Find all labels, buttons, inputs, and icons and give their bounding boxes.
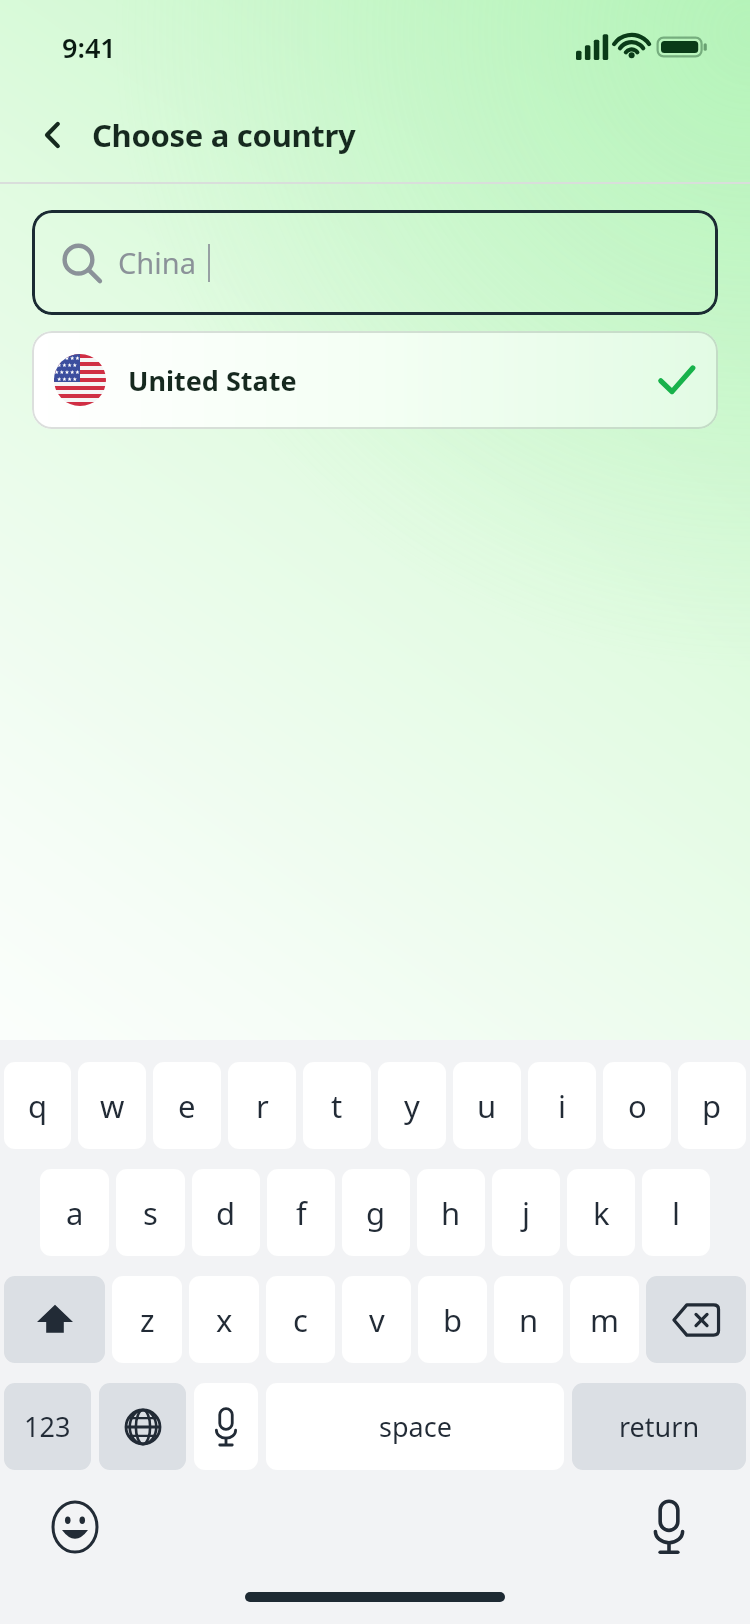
button[interactable]: m bbox=[570, 1276, 639, 1363]
staticText: y bbox=[404, 1085, 420, 1127]
staticText: Choose a country bbox=[92, 114, 356, 156]
button[interactable]: e bbox=[153, 1062, 221, 1149]
button[interactable]: China bbox=[32, 210, 718, 315]
staticText: d bbox=[216, 1192, 236, 1234]
button[interactable]: return bbox=[572, 1383, 746, 1470]
button[interactable]: Back bbox=[26, 108, 80, 162]
button[interactable]: a bbox=[40, 1169, 109, 1256]
staticText: return bbox=[619, 1408, 700, 1445]
staticText: c bbox=[293, 1299, 308, 1341]
staticText: f bbox=[296, 1192, 307, 1234]
staticText: a bbox=[66, 1192, 84, 1234]
button[interactable]: z bbox=[112, 1276, 182, 1363]
button[interactable]: g bbox=[342, 1169, 410, 1256]
staticText: h bbox=[441, 1192, 461, 1234]
button[interactable]: k bbox=[567, 1169, 635, 1256]
button[interactable]: u bbox=[453, 1062, 521, 1149]
button[interactable]: Emoji bbox=[40, 1492, 110, 1562]
staticText: z bbox=[140, 1299, 155, 1341]
staticText: 123 bbox=[24, 1408, 71, 1445]
staticText: l bbox=[672, 1192, 680, 1234]
button[interactable]: v bbox=[342, 1276, 411, 1363]
button[interactable]: x bbox=[189, 1276, 259, 1363]
staticText: v bbox=[369, 1299, 385, 1341]
button[interactable]: r bbox=[228, 1062, 296, 1149]
button[interactable]: h bbox=[417, 1169, 485, 1256]
button[interactable]: i bbox=[528, 1062, 596, 1149]
staticText: m bbox=[590, 1299, 619, 1341]
button[interactable]: Change keyboard language bbox=[99, 1383, 186, 1470]
staticText: n bbox=[519, 1299, 539, 1341]
button[interactable]: l bbox=[642, 1169, 710, 1256]
button[interactable]: d bbox=[192, 1169, 260, 1256]
button[interactable]: Shift bbox=[4, 1276, 105, 1363]
staticText: w bbox=[100, 1085, 125, 1127]
button[interactable]: c bbox=[266, 1276, 335, 1363]
staticText: b bbox=[443, 1299, 463, 1341]
button[interactable]: y bbox=[378, 1062, 446, 1149]
staticText: r bbox=[256, 1085, 269, 1127]
button[interactable]: n bbox=[494, 1276, 563, 1363]
staticText: 9:41 bbox=[62, 29, 116, 66]
staticText: p bbox=[702, 1085, 722, 1127]
button[interactable]: United State bbox=[32, 331, 718, 429]
staticText: j bbox=[522, 1192, 530, 1234]
button[interactable]: q bbox=[4, 1062, 71, 1149]
button[interactable]: f bbox=[267, 1169, 335, 1256]
button[interactable]: Dictation bbox=[634, 1492, 704, 1562]
staticText: i bbox=[558, 1085, 566, 1127]
staticText: g bbox=[366, 1192, 386, 1234]
staticText: o bbox=[628, 1085, 647, 1127]
staticText: x bbox=[216, 1299, 233, 1341]
staticText: q bbox=[28, 1085, 48, 1127]
staticText: China bbox=[118, 243, 196, 282]
button[interactable]: Voice input bbox=[194, 1383, 258, 1470]
button[interactable]: space bbox=[266, 1383, 564, 1470]
staticText: k bbox=[593, 1192, 610, 1234]
other: Selected bbox=[656, 360, 696, 400]
button[interactable]: p bbox=[678, 1062, 746, 1149]
staticText: u bbox=[477, 1085, 497, 1127]
button[interactable]: b bbox=[418, 1276, 487, 1363]
button[interactable]: 123 bbox=[4, 1383, 91, 1470]
button[interactable]: w bbox=[78, 1062, 146, 1149]
staticText: e bbox=[178, 1085, 196, 1127]
button[interactable]: Backspace bbox=[646, 1276, 746, 1363]
staticText: United State bbox=[128, 362, 297, 399]
staticText: t bbox=[331, 1085, 343, 1127]
button[interactable]: s bbox=[116, 1169, 185, 1256]
button[interactable]: j bbox=[492, 1169, 560, 1256]
staticText: s bbox=[143, 1192, 158, 1234]
button[interactable]: o bbox=[603, 1062, 671, 1149]
staticText: space bbox=[379, 1408, 452, 1445]
button[interactable]: t bbox=[303, 1062, 371, 1149]
